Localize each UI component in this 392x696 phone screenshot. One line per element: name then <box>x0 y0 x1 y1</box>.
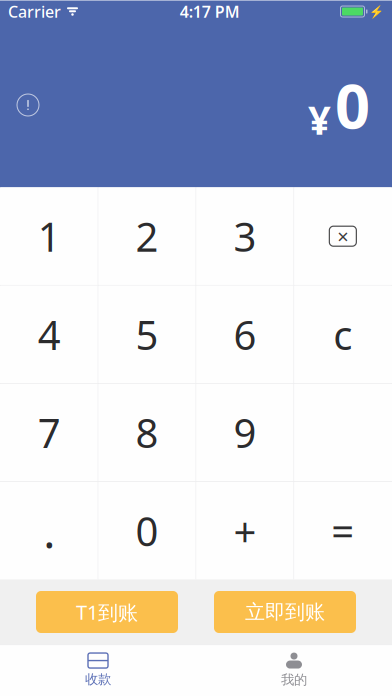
staticText: + <box>233 504 256 557</box>
button[interactable]: 4 <box>1 286 98 383</box>
button[interactable]: 3 <box>196 187 294 285</box>
staticText: c <box>333 308 352 361</box>
button[interactable]: Information <box>6 83 50 127</box>
staticText: 6 <box>233 308 256 361</box>
staticText: × <box>337 223 348 249</box>
staticText: 7 <box>38 406 61 459</box>
staticText: 我的 <box>281 672 307 688</box>
button[interactable]: 收款 <box>0 645 196 695</box>
button[interactable]: 我的 <box>196 645 392 695</box>
staticText: ⚡ <box>369 5 384 18</box>
button[interactable]: 0 <box>98 482 196 579</box>
button[interactable]: . <box>1 482 98 579</box>
staticText: 0 <box>335 64 370 146</box>
staticText: 3 <box>233 210 256 263</box>
button[interactable]: Delete <box>294 187 391 285</box>
button[interactable]: 2 <box>98 187 196 285</box>
button[interactable]: + <box>196 482 294 579</box>
staticText: . <box>43 501 55 561</box>
button[interactable]: T1到账 <box>36 591 178 633</box>
button[interactable]: 9 <box>196 384 294 481</box>
staticText: ¥ <box>308 93 331 146</box>
staticText: Carrier <box>8 1 61 22</box>
staticText: 4:17 PM <box>180 1 240 22</box>
staticText: 1 <box>38 210 61 263</box>
staticText: 0 <box>136 504 159 557</box>
button[interactable]: = <box>294 482 391 579</box>
button[interactable]: 1 <box>1 187 98 285</box>
button[interactable]: c <box>294 286 391 383</box>
staticText: T1到账 <box>76 599 138 625</box>
staticText: 收款 <box>85 671 111 687</box>
button[interactable]: 立即到账 <box>214 591 356 633</box>
staticText: 立即到账 <box>245 600 325 624</box>
staticText: 5 <box>136 308 159 361</box>
button[interactable]: 7 <box>1 384 98 481</box>
staticText: = <box>331 504 354 557</box>
button[interactable]: 5 <box>98 286 196 383</box>
staticText: 8 <box>136 406 159 459</box>
button[interactable]: 6 <box>196 286 294 383</box>
staticText: 4 <box>38 308 61 361</box>
button[interactable]: 8 <box>98 384 196 481</box>
staticText: 9 <box>233 406 256 459</box>
staticText: 2 <box>136 210 159 263</box>
